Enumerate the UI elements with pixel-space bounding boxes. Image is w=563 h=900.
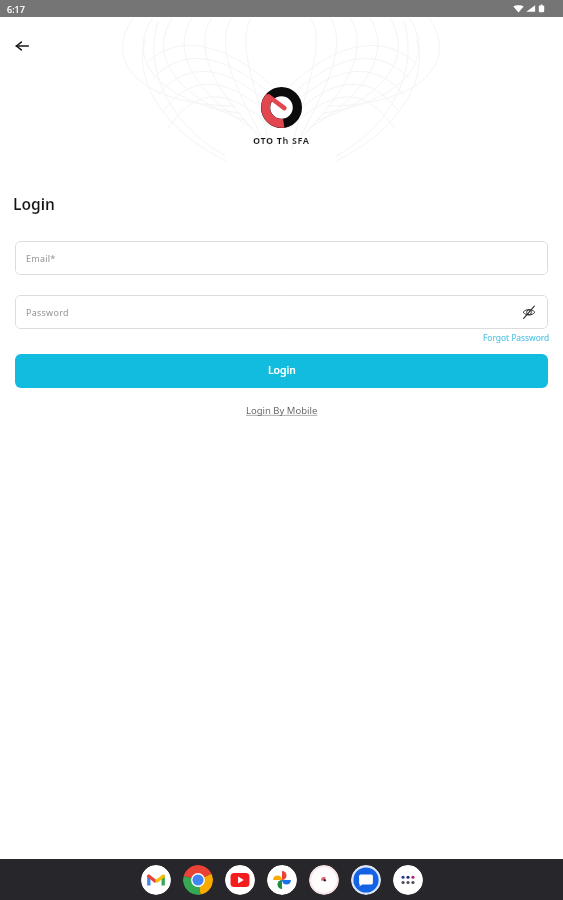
button[interactable]: Clock bbox=[309, 865, 339, 895]
button[interactable]: Show password bbox=[519, 302, 539, 322]
button[interactable]: YouTube bbox=[225, 865, 255, 895]
staticText: Email* bbox=[26, 252, 56, 264]
button[interactable]: Photos bbox=[267, 865, 297, 895]
button[interactable]: All apps bbox=[393, 865, 423, 895]
staticText: Login bbox=[268, 363, 296, 377]
staticText: 6:17 bbox=[7, 3, 25, 15]
button[interactable]: Forgot Password bbox=[483, 330, 550, 345]
staticText: Password bbox=[26, 306, 69, 318]
staticText: Login bbox=[13, 193, 56, 214]
button[interactable]: Back bbox=[6, 30, 38, 62]
staticText: OTO Th SFA bbox=[253, 134, 310, 146]
button[interactable]: Email* bbox=[15, 241, 548, 275]
button[interactable]: Login By Mobile bbox=[246, 404, 318, 417]
button[interactable]: Login bbox=[15, 354, 548, 388]
button[interactable]: Gmail bbox=[141, 865, 171, 895]
button[interactable]: Messages bbox=[351, 865, 381, 895]
staticText: Forgot Password bbox=[483, 332, 550, 343]
button[interactable]: Password bbox=[15, 295, 548, 329]
button[interactable]: Chrome bbox=[183, 865, 213, 895]
